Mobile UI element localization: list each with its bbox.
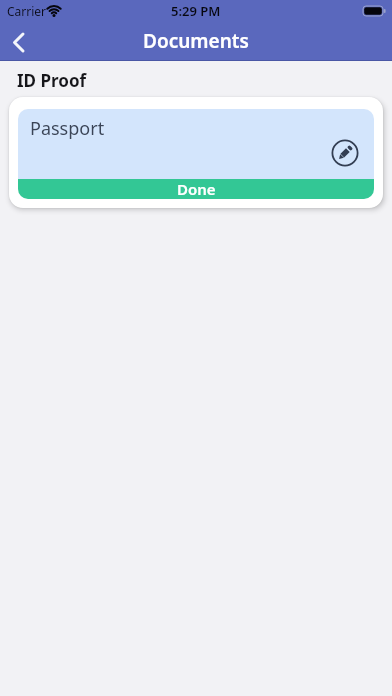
button[interactable] [6, 30, 30, 54]
staticText: Passport [30, 116, 105, 141]
staticText: Documents [143, 28, 249, 54]
button[interactable]: Done [18, 179, 374, 199]
button[interactable] [331, 139, 359, 167]
staticText: Carrier [7, 3, 47, 19]
staticText: Done [177, 179, 216, 199]
staticText: 5:29 PM [171, 2, 221, 20]
staticText: ID Proof [17, 69, 87, 92]
